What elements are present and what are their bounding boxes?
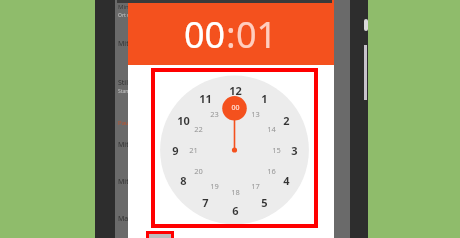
staticText: 15 bbox=[272, 145, 281, 155]
staticText: 11 bbox=[199, 91, 212, 105]
staticText: 18 bbox=[231, 187, 240, 197]
staticText: 14 bbox=[267, 124, 276, 134]
staticText: 5 bbox=[261, 195, 268, 209]
staticText: Mittag bbox=[118, 140, 140, 150]
staticText: Pausen bbox=[118, 119, 139, 127]
button[interactable]: 6 bbox=[226, 203, 244, 217]
button[interactable]: 13 bbox=[247, 108, 263, 120]
button[interactable]: 00 bbox=[128, 0, 334, 65]
button[interactable]: 20 bbox=[190, 165, 206, 177]
button[interactable]: 4 bbox=[277, 173, 295, 187]
staticText: 19 bbox=[210, 181, 219, 191]
button[interactable]: 7 bbox=[196, 195, 214, 209]
staticText: 7 bbox=[202, 195, 209, 209]
staticText: 00 bbox=[231, 103, 240, 113]
button[interactable]: 16 bbox=[263, 165, 279, 177]
button[interactable]: 9 bbox=[166, 143, 184, 157]
staticText: 20 bbox=[194, 166, 203, 176]
button[interactable]: 11 bbox=[196, 91, 214, 105]
button[interactable]: 5 bbox=[255, 195, 273, 209]
staticText: 2 bbox=[283, 113, 290, 127]
button[interactable]: 10 bbox=[174, 113, 192, 127]
button[interactable]: 21 bbox=[185, 144, 201, 156]
button[interactable]: 1 bbox=[255, 91, 273, 105]
staticText: Mittagspause bbox=[118, 177, 163, 187]
staticText: 21 bbox=[189, 145, 198, 155]
staticText: 4 bbox=[283, 173, 290, 187]
button[interactable]: 22 bbox=[190, 123, 206, 135]
staticText: 12 bbox=[229, 83, 242, 97]
staticText: 16 bbox=[267, 166, 276, 176]
staticText: 10 bbox=[177, 113, 190, 127]
button[interactable]: 15 bbox=[268, 144, 284, 156]
staticText: 3 bbox=[291, 143, 298, 157]
staticText: Stil bbox=[118, 78, 128, 88]
staticText: : bbox=[226, 10, 236, 59]
button[interactable]: 2 bbox=[277, 113, 295, 127]
button[interactable]: 23 bbox=[206, 108, 222, 120]
button[interactable]: 17 bbox=[247, 180, 263, 192]
staticText: 1 bbox=[261, 91, 268, 105]
staticText: 17 bbox=[251, 181, 260, 191]
staticText: 8 bbox=[180, 173, 187, 187]
staticText: 00 bbox=[184, 10, 226, 59]
button[interactable]: 12 bbox=[226, 83, 244, 97]
staticText: Ort wählen bbox=[118, 12, 145, 19]
staticText: 22 bbox=[194, 124, 203, 134]
button[interactable]: 19 bbox=[206, 180, 222, 192]
button[interactable]: 18 bbox=[227, 186, 243, 198]
button[interactable]: 12 bbox=[151, 68, 318, 228]
staticText: Mitternacht bbox=[118, 39, 157, 49]
button[interactable] bbox=[146, 231, 174, 238]
staticText: Manuell bbox=[118, 214, 145, 224]
staticText: 23 bbox=[210, 109, 219, 119]
staticText: Minuten und Sekundenanzeige bbox=[118, 3, 206, 11]
staticText: 13 bbox=[251, 109, 260, 119]
button[interactable]: 14 bbox=[263, 123, 279, 135]
button[interactable]: Selected hour 00 bbox=[226, 102, 244, 114]
staticText: 9 bbox=[172, 143, 179, 157]
button[interactable]: 8 bbox=[174, 173, 192, 187]
staticText: 6 bbox=[232, 203, 239, 217]
staticText: 01 bbox=[236, 10, 278, 59]
staticText: Standard bbox=[118, 88, 140, 95]
button[interactable]: 3 bbox=[285, 143, 303, 157]
